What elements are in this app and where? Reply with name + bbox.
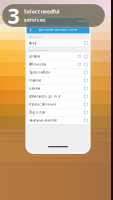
staticText: 9:41 bbox=[28, 19, 35, 23]
staticText: Обед в пути bbox=[29, 111, 46, 114]
staticText: ‹ bbox=[30, 25, 32, 34]
button[interactable]: Обед в пути bbox=[26, 108, 90, 116]
staticText: Доставка bbox=[29, 55, 40, 58]
button[interactable]: Детское кресло до 36 кг bbox=[26, 92, 90, 100]
button[interactable]: Доставка bbox=[26, 52, 90, 60]
staticText: Начальный комплект bbox=[29, 119, 57, 122]
staticText: ВЫБРАННЫЙ ТАРИФ bbox=[29, 36, 43, 38]
staticText: ДОПОЛНИТЕЛЬНЫЕ УСЛУГИ bbox=[29, 50, 49, 51]
staticText: Select needful bbox=[24, 8, 60, 15]
staticText: Детское кресло до 36 кг bbox=[29, 95, 61, 98]
staticText: services bbox=[24, 16, 46, 23]
staticText: Грузчики bbox=[29, 87, 41, 90]
button[interactable]: Back bbox=[28, 25, 34, 33]
staticText: 3 bbox=[7, 1, 19, 30]
staticText: ДОПОЛНИТЕЛЬНЫЕ УСЛУГИ bbox=[39, 28, 77, 31]
staticText: Меблировка bbox=[29, 63, 46, 66]
button[interactable]: Грузчики bbox=[26, 84, 90, 92]
button[interactable]: Меблировка bbox=[26, 60, 90, 68]
staticText: Упаковка bbox=[29, 79, 41, 82]
staticText: Перевоз мебели bbox=[29, 71, 51, 74]
button[interactable]: Начальный комплект bbox=[26, 116, 90, 124]
staticText: Тариф bbox=[29, 41, 37, 45]
button[interactable]: Упаковка bbox=[26, 76, 90, 84]
button[interactable]: Тариф bbox=[26, 39, 90, 47]
button[interactable]: Встреча с табличкой bbox=[26, 100, 90, 108]
staticText: Встреча с табличкой bbox=[29, 103, 57, 106]
button[interactable]: Перевоз мебели bbox=[26, 68, 90, 76]
